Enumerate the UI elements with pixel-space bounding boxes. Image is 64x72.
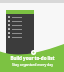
button[interactable]: Add task xyxy=(31,50,36,55)
staticText: Build your to-do list xyxy=(10,55,55,61)
button[interactable] xyxy=(6,10,34,56)
button[interactable] xyxy=(6,19,34,23)
button[interactable] xyxy=(6,23,34,27)
button[interactable] xyxy=(6,35,34,39)
button[interactable] xyxy=(6,15,34,19)
staticText: Stay organised every day xyxy=(12,62,53,67)
button[interactable] xyxy=(6,27,34,31)
button[interactable] xyxy=(6,31,34,35)
